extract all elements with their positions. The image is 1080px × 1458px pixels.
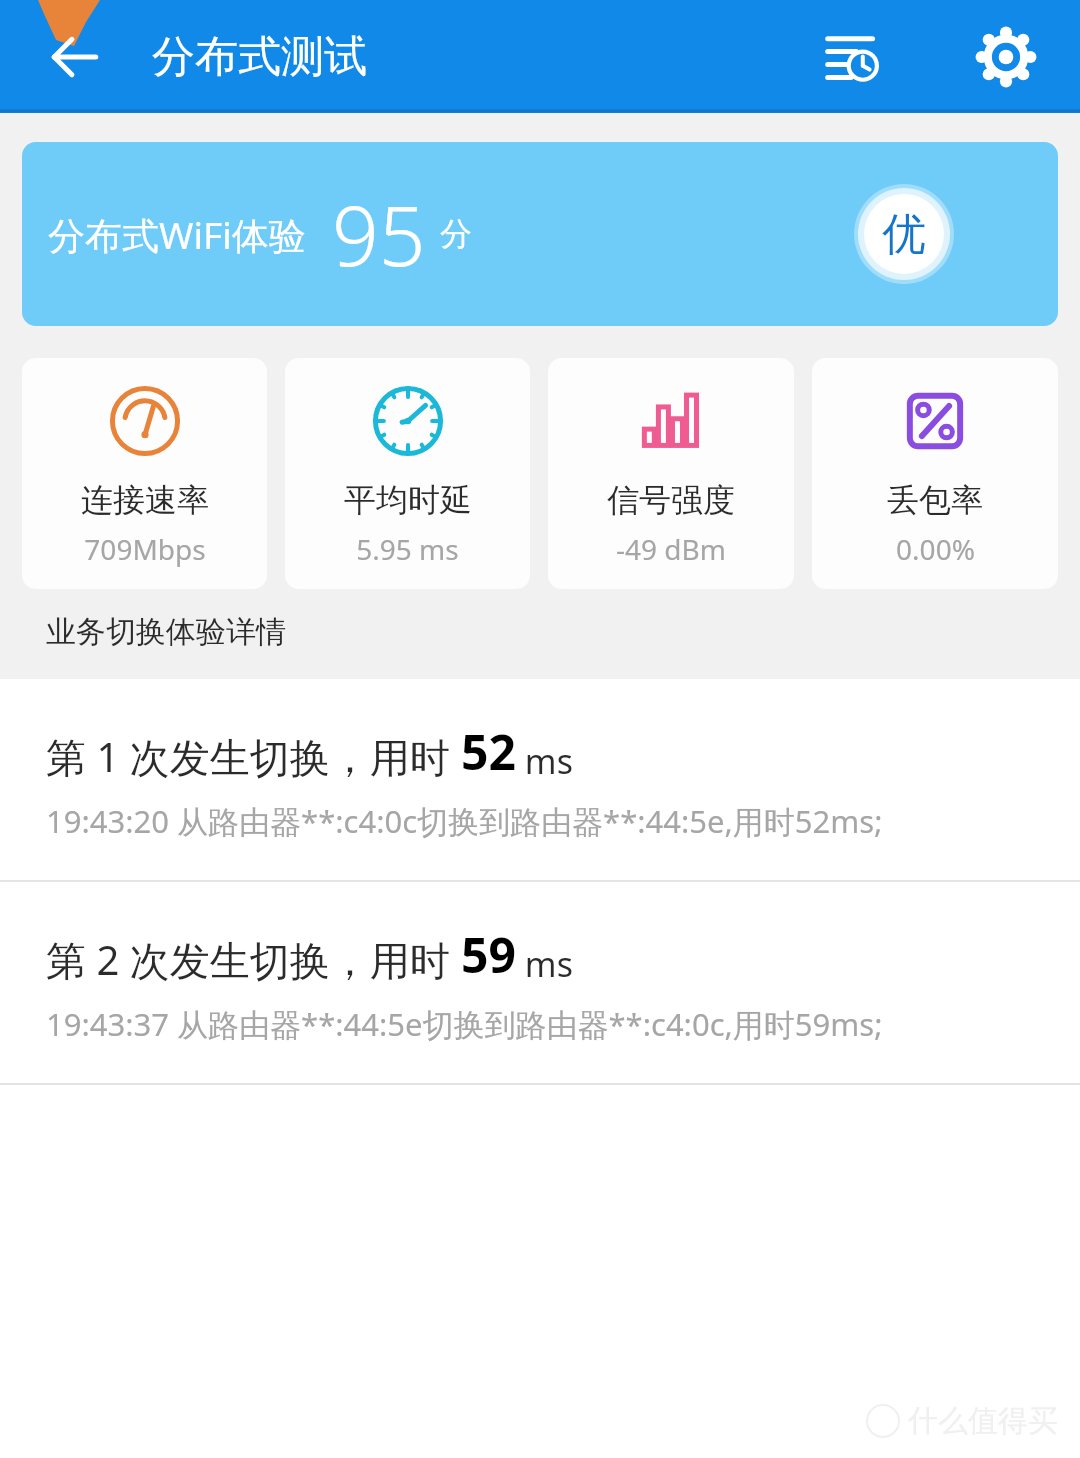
staticText: 19:43:20 从路由器**:c4:0c切换到路由器**:44:5e,用时52… — [46, 800, 883, 842]
staticText: 0.00% — [896, 530, 975, 568]
staticText: ms — [516, 941, 573, 987]
staticText: 52 — [461, 719, 516, 784]
staticText: -49 dBm — [616, 530, 726, 568]
staticText: 分 — [440, 214, 472, 254]
button[interactable]: 第 2 次发生切换，用时 — [0, 882, 1080, 1083]
staticText: 95 — [332, 178, 426, 290]
staticText: 分布式WiFi体验 — [48, 209, 306, 260]
staticText: 平均时延 — [344, 480, 472, 520]
staticText: 5.95 ms — [356, 530, 459, 568]
staticText: 信号强度 — [607, 480, 735, 520]
button[interactable]: Settings — [958, 9, 1054, 105]
button[interactable]: 第 1 次发生切换，用时 — [0, 679, 1080, 880]
staticText: 第 1 次发生切换，用时 — [46, 729, 461, 784]
staticText: 什么值得买 — [908, 1402, 1058, 1440]
staticText: 连接速率 — [81, 480, 209, 520]
button[interactable]: History — [804, 9, 900, 105]
staticText: 709Mbps — [84, 530, 206, 568]
staticText: 59 — [461, 922, 516, 987]
button[interactable]: 信号强度 — [548, 358, 794, 589]
button[interactable]: 平均时延 — [285, 358, 530, 589]
button[interactable]: 丢包率 — [812, 358, 1058, 589]
staticText: 19:43:37 从路由器**:44:5e切换到路由器**:c4:0c,用时59… — [46, 1003, 883, 1045]
staticText: ms — [516, 738, 573, 784]
staticText: 优 — [882, 207, 926, 262]
staticText: 第 2 次发生切换，用时 — [46, 932, 461, 987]
staticText: 分布式测试 — [152, 30, 367, 84]
button[interactable]: 分布式WiFi体验 — [22, 142, 1058, 326]
button[interactable]: Back — [30, 13, 118, 101]
button[interactable]: 连接速率 — [22, 358, 267, 589]
staticText: 丢包率 — [887, 480, 983, 520]
staticText: 业务切换体验详情 — [46, 613, 286, 651]
